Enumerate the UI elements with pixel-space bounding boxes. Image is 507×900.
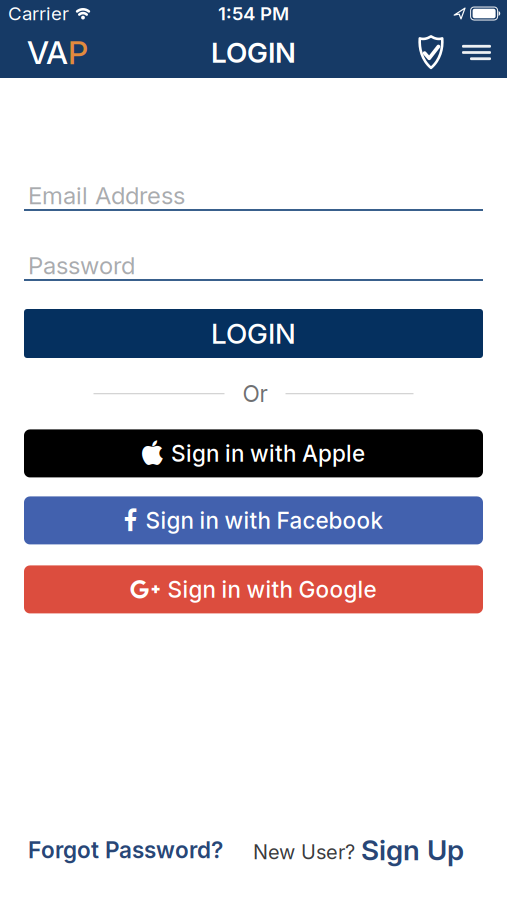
staticText: Password [28, 251, 135, 280]
staticText: Sign in with Apple [171, 440, 365, 467]
button[interactable]:  [24, 565, 483, 613]
staticText: New User? [253, 840, 355, 864]
button[interactable]: Password [0, 251, 507, 281]
staticText:  [142, 440, 163, 467]
staticText: Carrier [8, 2, 69, 25]
staticText: Or [242, 380, 267, 407]
staticText: Sign Up [361, 833, 464, 867]
button[interactable]:  [24, 496, 483, 544]
staticText: Sign in with Facebook [145, 507, 383, 534]
button[interactable]: Email Address [0, 181, 507, 211]
button[interactable]:  [24, 429, 483, 477]
button[interactable]: Security [410, 35, 462, 69]
staticText: Forgot Password? [28, 836, 223, 864]
staticText: Email Address [28, 181, 185, 210]
staticText: P [68, 33, 88, 72]
staticText: VA [27, 33, 68, 72]
button[interactable]: LOGIN [24, 309, 483, 358]
button[interactable]: Menu [462, 45, 507, 60]
button[interactable]: New User? [253, 833, 464, 867]
staticText: LOGIN [211, 317, 296, 350]
staticText:  [130, 578, 159, 601]
staticText: Sign in with Google [167, 576, 376, 603]
staticText: LOGIN [211, 36, 296, 69]
button[interactable]: Forgot Password? [28, 836, 223, 864]
staticText: 1:54 PM [218, 2, 289, 25]
staticText:  [123, 508, 137, 532]
